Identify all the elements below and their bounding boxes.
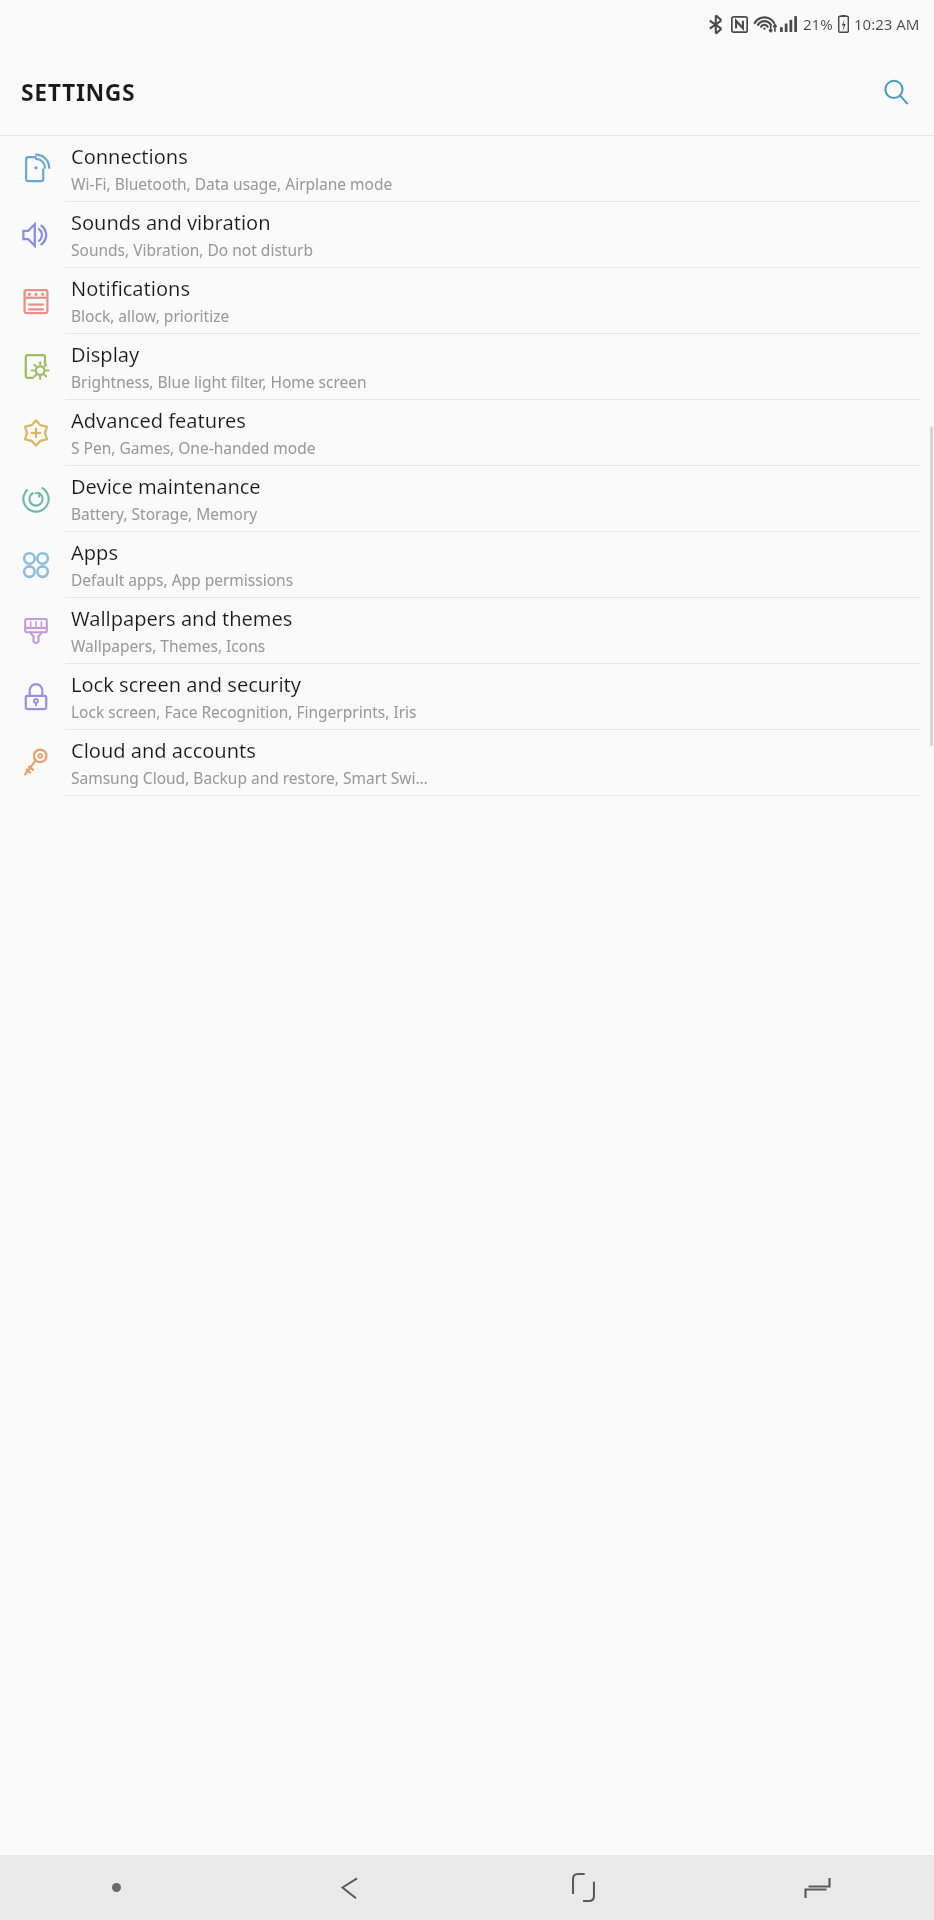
staticText: S Pen, Games, One-handed mode bbox=[71, 437, 316, 458]
button[interactable]: Home bbox=[466, 1855, 700, 1920]
button[interactable]: Connections bbox=[0, 136, 934, 202]
staticText: Samsung Cloud, Backup and restore, Smart… bbox=[71, 767, 428, 788]
staticText: Sounds, Vibration, Do not disturb bbox=[71, 239, 313, 260]
staticText: Lock screen and security bbox=[71, 671, 301, 698]
staticText: Device maintenance bbox=[71, 473, 261, 500]
button[interactable]: Display bbox=[0, 334, 934, 400]
staticText: Wallpapers, Themes, Icons bbox=[71, 635, 266, 656]
button[interactable]: Back bbox=[233, 1855, 466, 1920]
button[interactable]: Sounds and vibration bbox=[0, 202, 934, 268]
staticText: Wi-Fi, Bluetooth, Data usage, Airplane m… bbox=[71, 173, 393, 194]
staticText: Default apps, App permissions bbox=[71, 569, 294, 590]
staticText: Battery, Storage, Memory bbox=[71, 503, 258, 524]
staticText: Display bbox=[71, 341, 140, 368]
staticText: Sounds and vibration bbox=[71, 209, 271, 236]
button[interactable]: Device maintenance bbox=[0, 466, 934, 532]
staticText: SETTINGS bbox=[21, 76, 136, 107]
button[interactable]: Search bbox=[872, 68, 920, 116]
staticText: Advanced features bbox=[71, 407, 246, 434]
staticText: Wallpapers and themes bbox=[71, 605, 293, 632]
button[interactable]: Lock screen and security bbox=[0, 664, 934, 730]
button[interactable]: Notifications bbox=[0, 268, 934, 334]
button[interactable]: Advanced features bbox=[0, 400, 934, 466]
button[interactable]: Apps bbox=[0, 532, 934, 598]
staticText: Brightness, Blue light filter, Home scre… bbox=[71, 371, 367, 392]
staticText: 10:23 AM bbox=[854, 14, 920, 34]
staticText: Connections bbox=[71, 143, 188, 170]
staticText: Notifications bbox=[71, 275, 190, 302]
staticText: Lock screen, Face Recognition, Fingerpri… bbox=[71, 701, 417, 722]
staticText: Apps bbox=[71, 539, 118, 566]
staticText: Cloud and accounts bbox=[71, 737, 256, 764]
button[interactable]: Recents bbox=[700, 1855, 934, 1920]
button[interactable]: Wallpapers and themes bbox=[0, 598, 934, 664]
staticText: Block, allow, prioritize bbox=[71, 305, 230, 326]
staticText: 21% bbox=[803, 14, 833, 34]
button[interactable]: Cloud and accounts bbox=[0, 730, 934, 796]
